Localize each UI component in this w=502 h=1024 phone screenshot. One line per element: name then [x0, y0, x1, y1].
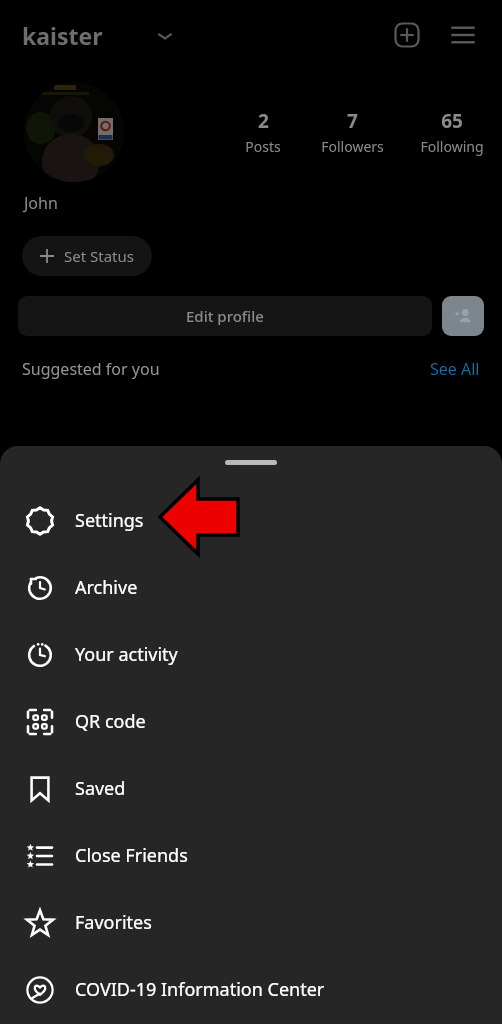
staticText: Suggested for you [22, 358, 160, 380]
staticText: Edit profile [186, 306, 264, 326]
button[interactable]: COVID-19 Information Center [0, 956, 502, 1023]
button[interactable]: See All [430, 358, 480, 380]
button[interactable]: Set Status [22, 236, 152, 276]
button[interactable]: QR code [0, 688, 502, 755]
staticText: Favorites [75, 910, 152, 935]
staticText: Set Status [64, 246, 134, 266]
button[interactable]: Menu [446, 18, 480, 52]
staticText: Archive [75, 575, 138, 600]
staticText: COVID-19 Information Center [75, 977, 325, 1002]
button[interactable]: Your activity [0, 621, 502, 688]
staticText: Close Friends [75, 843, 188, 868]
staticText: Settings [75, 508, 144, 533]
staticText: See All [430, 358, 480, 380]
button[interactable]: Archive [0, 554, 502, 621]
button[interactable]: Saved [0, 755, 502, 822]
staticText: 2 [258, 108, 269, 134]
button[interactable]: Close Friends [0, 822, 502, 889]
staticText: 7 [347, 108, 358, 134]
button[interactable]: Favorites [0, 889, 502, 956]
button[interactable]: Edit profile [18, 296, 432, 336]
staticText: QR code [75, 709, 146, 734]
button[interactable]: Settings [0, 487, 502, 554]
button[interactable]: Discover people [442, 296, 484, 336]
button[interactable]: 2 [245, 108, 281, 156]
staticText: Your activity [75, 642, 178, 667]
staticText: Following [420, 137, 484, 156]
staticText: Posts [245, 137, 281, 156]
button[interactable]: Profile photo [24, 82, 124, 182]
button[interactable]: 7 [321, 108, 384, 156]
button[interactable]: 65 [420, 108, 484, 156]
button[interactable]: kaister [22, 20, 175, 51]
staticText: kaister [22, 20, 103, 51]
button[interactable]: New post [390, 18, 424, 52]
staticText: Saved [75, 776, 126, 801]
staticText: John [24, 192, 58, 214]
staticText: Followers [321, 137, 384, 156]
staticText: 65 [441, 108, 463, 134]
